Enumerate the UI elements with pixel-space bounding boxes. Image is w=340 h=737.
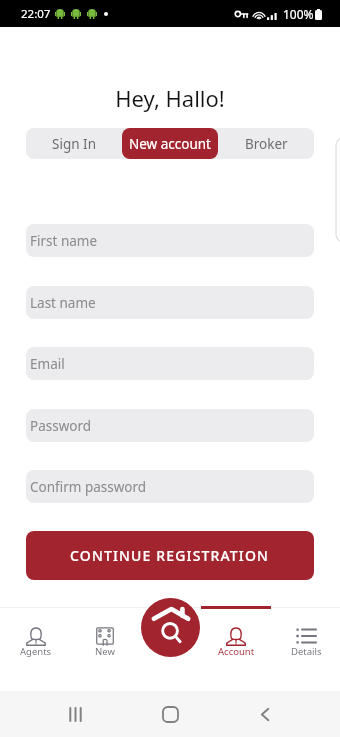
staticText: First name	[30, 232, 98, 250]
button[interactable]: Confirm password	[26, 470, 314, 503]
staticText: Email	[30, 355, 65, 373]
staticText: Details	[291, 645, 322, 658]
staticText: Password	[30, 417, 92, 435]
button[interactable]: Details	[277, 618, 335, 664]
staticText: Broker	[245, 135, 288, 153]
button[interactable]: Password	[26, 409, 314, 442]
button[interactable]: Home	[147, 691, 193, 737]
staticText: Hey, Hallo!	[0, 83, 340, 113]
staticText: New account	[129, 135, 211, 153]
button[interactable]: Recents	[52, 691, 98, 737]
staticText: 22:07	[21, 6, 51, 22]
button[interactable]: Search homes	[141, 598, 200, 657]
button[interactable]: Sign In	[26, 128, 122, 159]
button[interactable]: New	[76, 618, 134, 664]
staticText: Last name	[30, 294, 96, 312]
staticText: Sign In	[52, 135, 96, 153]
staticText: Confirm password	[30, 478, 147, 496]
button[interactable]: New account	[122, 128, 218, 159]
staticText: Account	[218, 645, 255, 658]
staticText: CONTINUE REGISTRATION	[70, 546, 270, 565]
button[interactable]: Account	[207, 618, 265, 664]
button[interactable]: Agents	[7, 618, 65, 664]
button[interactable]: First name	[26, 224, 314, 257]
staticText: 100%	[283, 6, 314, 22]
button[interactable]: Last name	[26, 286, 314, 319]
staticText: New	[95, 645, 115, 658]
button[interactable]: Back	[242, 691, 288, 737]
button[interactable]: CONTINUE REGISTRATION	[26, 531, 314, 580]
button[interactable]: Broker	[218, 128, 314, 159]
staticText: Agents	[20, 645, 52, 658]
button[interactable]: Email	[26, 347, 314, 380]
